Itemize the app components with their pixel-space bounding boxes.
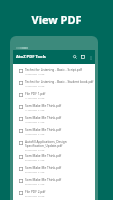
- button[interactable]: Search: [71, 53, 79, 61]
- staticText: File PDF 2.pdf: [25, 190, 46, 194]
- staticText: 11 May 2020 0.5 MB: [25, 97, 45, 100]
- button[interactable]: Som Make Me Think.pdf: [13, 126, 95, 138]
- button[interactable]: Som Make Me Think.pdf: [13, 164, 95, 176]
- staticText: 12 May 2020 1.2 MB: [25, 73, 45, 76]
- staticText: Som Make Me Think.pdf: [25, 154, 62, 158]
- staticText: Som Make Me Think.pdf: [25, 128, 62, 132]
- staticText: 09 May 2020 2.1 MB: [25, 171, 45, 174]
- staticText: Som Make Me Think.pdf: [25, 178, 62, 182]
- staticText: Som Make Me Think.pdf: [25, 116, 62, 120]
- button[interactable]: File PDF 2.pdf: [13, 188, 95, 200]
- button[interactable]: More options: [87, 54, 94, 61]
- staticText: AtoZ PDF Tools: [16, 54, 46, 60]
- staticText: 09 May 2020 3.3 MB: [25, 149, 45, 152]
- button[interactable]: Som Make Me Think.pdf: [13, 114, 95, 126]
- button[interactable]: Techni for Listening - Basic - Script.pd…: [13, 66, 95, 78]
- staticText: File PDF 1.pdf: [25, 92, 46, 96]
- staticText: 10 May 2020 2.1 MB: [25, 121, 45, 124]
- staticText: Som Make Me Think.pdf: [25, 166, 62, 170]
- button[interactable]: Select all: [79, 53, 87, 61]
- staticText: 08 May 2020 2.1 MB: [25, 183, 45, 186]
- staticText: 11 May 2020 2.1 MB: [25, 109, 45, 112]
- staticText: 10 May 2020 2.1 MB: [25, 133, 45, 136]
- button[interactable]: File PDF 1.pdf: [13, 90, 95, 102]
- staticText: Som Make Me Think.pdf: [25, 104, 62, 108]
- staticText: Techni for Listening - Basic - Student b…: [25, 80, 94, 84]
- button[interactable]: Som Make Me Think.pdf: [13, 152, 95, 164]
- button[interactable]: Som Make Me Think.pdf: [13, 102, 95, 114]
- button[interactable]: Som Make Me Think.pdf: [13, 176, 95, 188]
- staticText: Autofill Applications_Design Specificati…: [25, 140, 94, 148]
- staticText: Techni for Listening - Basic - Script.pd…: [25, 68, 82, 72]
- staticText: 12 May 2020 4.5 MB: [25, 85, 45, 88]
- button[interactable]: Techni for Listening - Basic - Student b…: [13, 78, 95, 90]
- button[interactable]: Autofill Applications_Design Specificati…: [13, 138, 95, 152]
- staticText: 09 May 2020 2.1 MB: [25, 159, 45, 162]
- staticText: 08 May 2020 0.8 MB: [25, 195, 45, 198]
- staticText: View PDF: [0, 12, 113, 27]
